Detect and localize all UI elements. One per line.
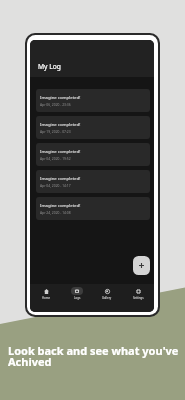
staticText: Apr 06, 2020 - 23:36 [40,102,71,106]
button[interactable]: Home [32,287,60,300]
button[interactable]: Logs [63,287,91,300]
staticText: Imagine completed! [40,175,81,181]
staticText: Apr 04, 2020 - 19:52 [40,156,71,160]
staticText: Gallery [102,296,112,300]
staticText: Settings [133,296,144,300]
button[interactable]: Imagine completed! [36,197,150,220]
staticText: Imagine completed! [40,148,81,154]
button[interactable]: Gallery [93,287,121,300]
staticText: Home [42,296,50,300]
staticText: Imagine completed! [40,121,81,127]
staticText: Apr 04, 2020 - 14:17 [40,183,71,187]
button[interactable]: Imagine completed! [36,116,150,139]
button[interactable]: Imagine completed! [36,170,150,193]
staticText: Logs [74,296,81,300]
staticText: Imagine completed! [40,202,81,208]
staticText: Imagine completed! [40,94,81,100]
staticText: Apr 19, 2020 - 07:23 [40,129,71,133]
button[interactable]: Settings [124,287,152,300]
staticText: Look back and see what you've Achived [8,343,179,369]
button[interactable] [133,256,150,275]
button[interactable]: Imagine completed! [36,89,150,112]
button[interactable]: Imagine completed! [36,143,150,166]
staticText: My Log [38,62,61,71]
staticText: Apr 24, 2020 - 14:08 [40,210,71,214]
